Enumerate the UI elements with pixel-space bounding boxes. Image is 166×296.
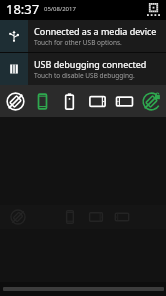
button[interactable]: Connected as a media device (0, 20, 166, 52)
staticText: USB debugging connected (34, 58, 147, 70)
button[interactable]: Auto rotate (3, 89, 27, 113)
button[interactable]: Tablet landscape (85, 89, 109, 113)
button[interactable]: Phone (30, 89, 54, 113)
staticText: 05/08/2017 (44, 5, 76, 13)
button[interactable]: App icon (147, 3, 160, 16)
button[interactable]: Close shade (0, 282, 166, 296)
staticText: Touch for other USB options. (34, 38, 122, 47)
button[interactable]: USB debugging connected (0, 53, 166, 85)
staticText: Touch to disable USB debugging. (34, 71, 135, 80)
staticText: 18:37 (6, 0, 40, 18)
button[interactable]: Battery (57, 89, 81, 113)
button[interactable]: Rotation lock (139, 89, 163, 113)
button[interactable]: Tablet (112, 89, 136, 113)
staticText: Connected as a media device (34, 25, 157, 37)
